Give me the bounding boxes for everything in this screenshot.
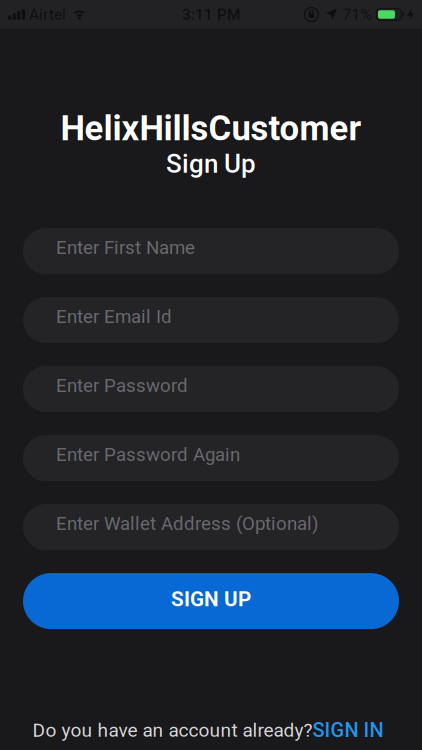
button[interactable]: Enter Password Again — [23, 435, 399, 481]
staticText: Enter Password Again — [56, 444, 240, 466]
staticText: Sign Up — [166, 149, 256, 179]
staticText: Do you have an account already? — [32, 719, 312, 741]
button[interactable]: SIGN UP — [23, 573, 399, 629]
staticText: 3:11 PM — [182, 5, 240, 23]
staticText: Enter Password — [56, 375, 188, 397]
staticText: Enter Email Id — [56, 306, 172, 328]
staticText: SIGN UP — [171, 587, 251, 611]
staticText: SIGN IN — [312, 719, 383, 742]
button[interactable]: SIGN IN — [312, 719, 383, 742]
button[interactable]: Enter Password — [23, 366, 399, 412]
staticText: 71% — [342, 5, 371, 23]
button[interactable]: Enter Email Id — [23, 297, 399, 343]
button[interactable]: Enter Wallet Address (Optional) — [23, 504, 399, 550]
staticText: Airtel — [29, 5, 66, 23]
staticText: HelixHillsCustomer — [60, 108, 361, 149]
staticText: Enter First Name — [56, 237, 195, 259]
button[interactable]: Enter First Name — [23, 228, 399, 274]
staticText: Enter Wallet Address (Optional) — [56, 513, 318, 535]
